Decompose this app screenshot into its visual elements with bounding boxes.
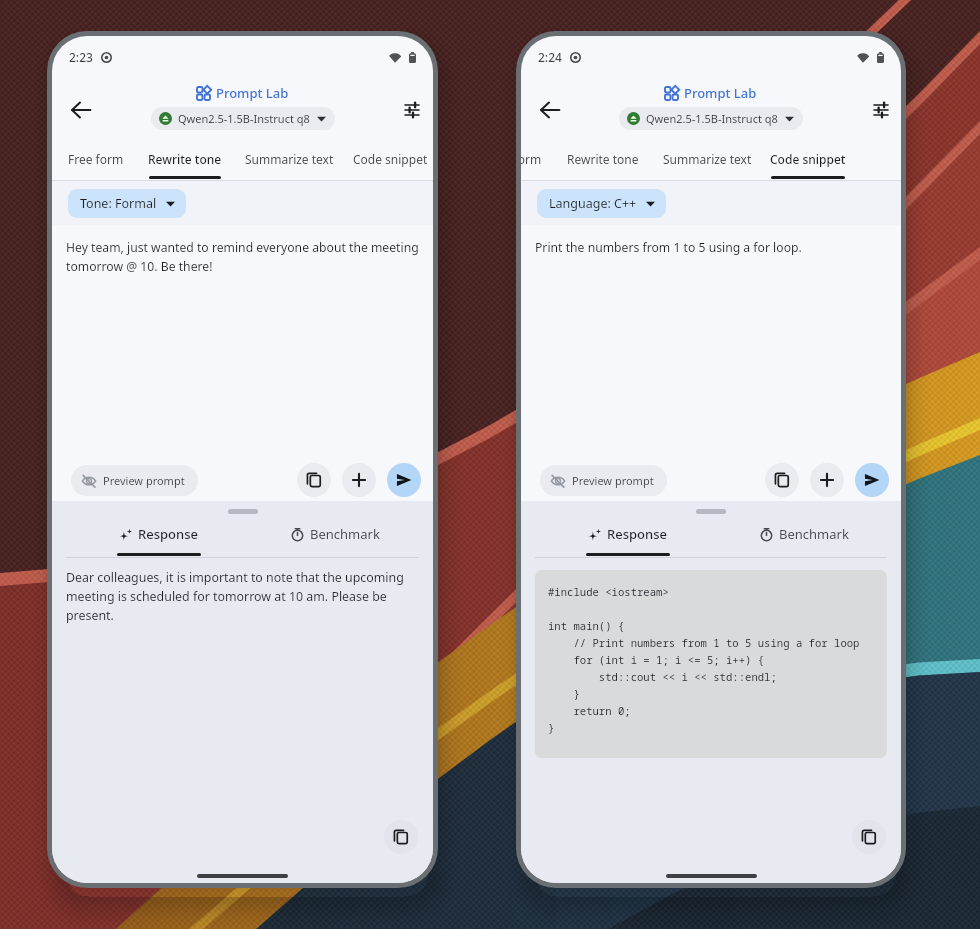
button[interactable]: Add bbox=[342, 463, 376, 497]
button[interactable]: Free form bbox=[521, 142, 558, 180]
button[interactable]: Settings bbox=[861, 90, 901, 130]
button[interactable]: Preview prompt bbox=[71, 465, 198, 496]
button[interactable]: Response bbox=[70, 517, 247, 557]
button[interactable]: Copy prompt bbox=[297, 463, 331, 497]
button[interactable]: Free form bbox=[52, 142, 140, 180]
button[interactable]: Rewrite tone bbox=[140, 142, 230, 180]
staticText: 2:23 bbox=[69, 49, 93, 65]
staticText: Benchmark bbox=[779, 525, 849, 543]
button[interactable]: Qwen2.5-1.5B-Instruct q8 bbox=[151, 107, 335, 130]
staticText: Tone: Formal bbox=[80, 195, 157, 212]
staticText: Free form bbox=[521, 151, 542, 167]
staticText: Prompt Lab bbox=[216, 84, 289, 102]
button[interactable]: Code snippet bbox=[766, 142, 850, 180]
button[interactable]: Settings bbox=[392, 90, 432, 130]
staticText: Preview prompt bbox=[572, 473, 654, 488]
button[interactable]: Summarize text bbox=[648, 142, 766, 180]
button[interactable]: Tone: Formal bbox=[68, 189, 186, 218]
button[interactable]: Copy response bbox=[384, 820, 418, 854]
button[interactable]: Add bbox=[810, 463, 844, 497]
staticText: Free form bbox=[68, 151, 124, 167]
staticText: Summarize text bbox=[245, 151, 334, 167]
staticText: Benchmark bbox=[310, 525, 380, 543]
button[interactable]: Qwen2.5-1.5B-Instruct q8 bbox=[619, 107, 803, 130]
button[interactable]: Summarize text bbox=[230, 142, 348, 180]
button[interactable]: Response bbox=[539, 517, 716, 557]
button[interactable]: Copy prompt bbox=[765, 463, 799, 497]
button[interactable]: Language: C++ bbox=[537, 189, 666, 218]
button[interactable]: Benchmark bbox=[716, 517, 893, 557]
staticText: Language: C++ bbox=[549, 195, 637, 212]
staticText: Response bbox=[138, 525, 198, 543]
button[interactable]: Benchmark bbox=[247, 517, 424, 557]
staticText: Code snippet bbox=[353, 151, 428, 167]
button[interactable]: Send bbox=[855, 463, 889, 497]
button[interactable]: Send bbox=[387, 463, 421, 497]
staticText: #include <iostream> int main() { // Prin… bbox=[548, 585, 860, 736]
staticText: Qwen2.5-1.5B-Instruct q8 bbox=[178, 111, 310, 126]
staticText: Dear colleagues, it is important to note… bbox=[66, 569, 423, 624]
staticText: Summarize text bbox=[663, 151, 752, 167]
button[interactable]: Code snippet bbox=[348, 142, 433, 180]
staticText: Preview prompt bbox=[103, 473, 185, 488]
staticText: Prompt Lab bbox=[684, 84, 757, 102]
staticText: Rewrite tone bbox=[148, 151, 222, 167]
staticText: Response bbox=[607, 525, 667, 543]
button[interactable]: Back bbox=[527, 87, 573, 133]
staticText: Qwen2.5-1.5B-Instruct q8 bbox=[646, 111, 778, 126]
staticText: Hey team, just wanted to remind everyone… bbox=[66, 239, 431, 274]
staticText: Print the numbers from 1 to 5 using a fo… bbox=[535, 239, 802, 256]
button[interactable]: Preview prompt bbox=[540, 465, 667, 496]
staticText: Code snippet bbox=[770, 151, 846, 167]
staticText: 2:24 bbox=[538, 49, 562, 65]
button[interactable]: Rewrite tone bbox=[558, 142, 648, 180]
staticText: Rewrite tone bbox=[567, 151, 639, 167]
button[interactable]: Back bbox=[58, 87, 104, 133]
button[interactable]: Copy response bbox=[852, 820, 886, 854]
